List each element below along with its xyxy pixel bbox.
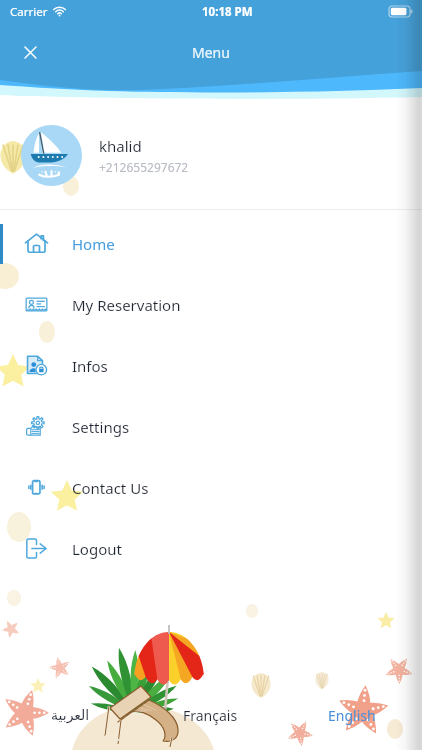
staticText: Carrier	[10, 4, 48, 20]
button[interactable]: khalid	[21, 125, 422, 186]
button[interactable]: Logout	[0, 518, 422, 579]
button[interactable]: Infos	[0, 335, 422, 396]
button[interactable]: العربية	[0, 690, 140, 740]
button[interactable]: Contact Us	[0, 457, 422, 518]
button[interactable]: Close menu	[14, 36, 46, 68]
staticText: العربية	[51, 707, 90, 723]
staticText: 10:18 PM	[202, 4, 253, 20]
button[interactable]: English	[281, 690, 422, 740]
staticText: Settings	[72, 417, 130, 437]
staticText: English	[328, 706, 376, 725]
staticText: Contact Us	[72, 478, 149, 498]
staticText: Menu	[192, 43, 230, 62]
staticText: My Reservation	[72, 295, 181, 315]
staticText: +212655297672	[99, 159, 189, 175]
staticText: Home	[72, 234, 115, 254]
staticText: Logout	[72, 539, 122, 559]
button[interactable]: Français	[140, 690, 281, 740]
button[interactable]: Home	[0, 213, 422, 274]
button[interactable]: Settings	[0, 396, 422, 457]
staticText: khalid	[99, 136, 142, 156]
staticText: Infos	[72, 356, 108, 376]
button[interactable]: My Reservation	[0, 274, 422, 335]
staticText: Français	[183, 706, 238, 725]
